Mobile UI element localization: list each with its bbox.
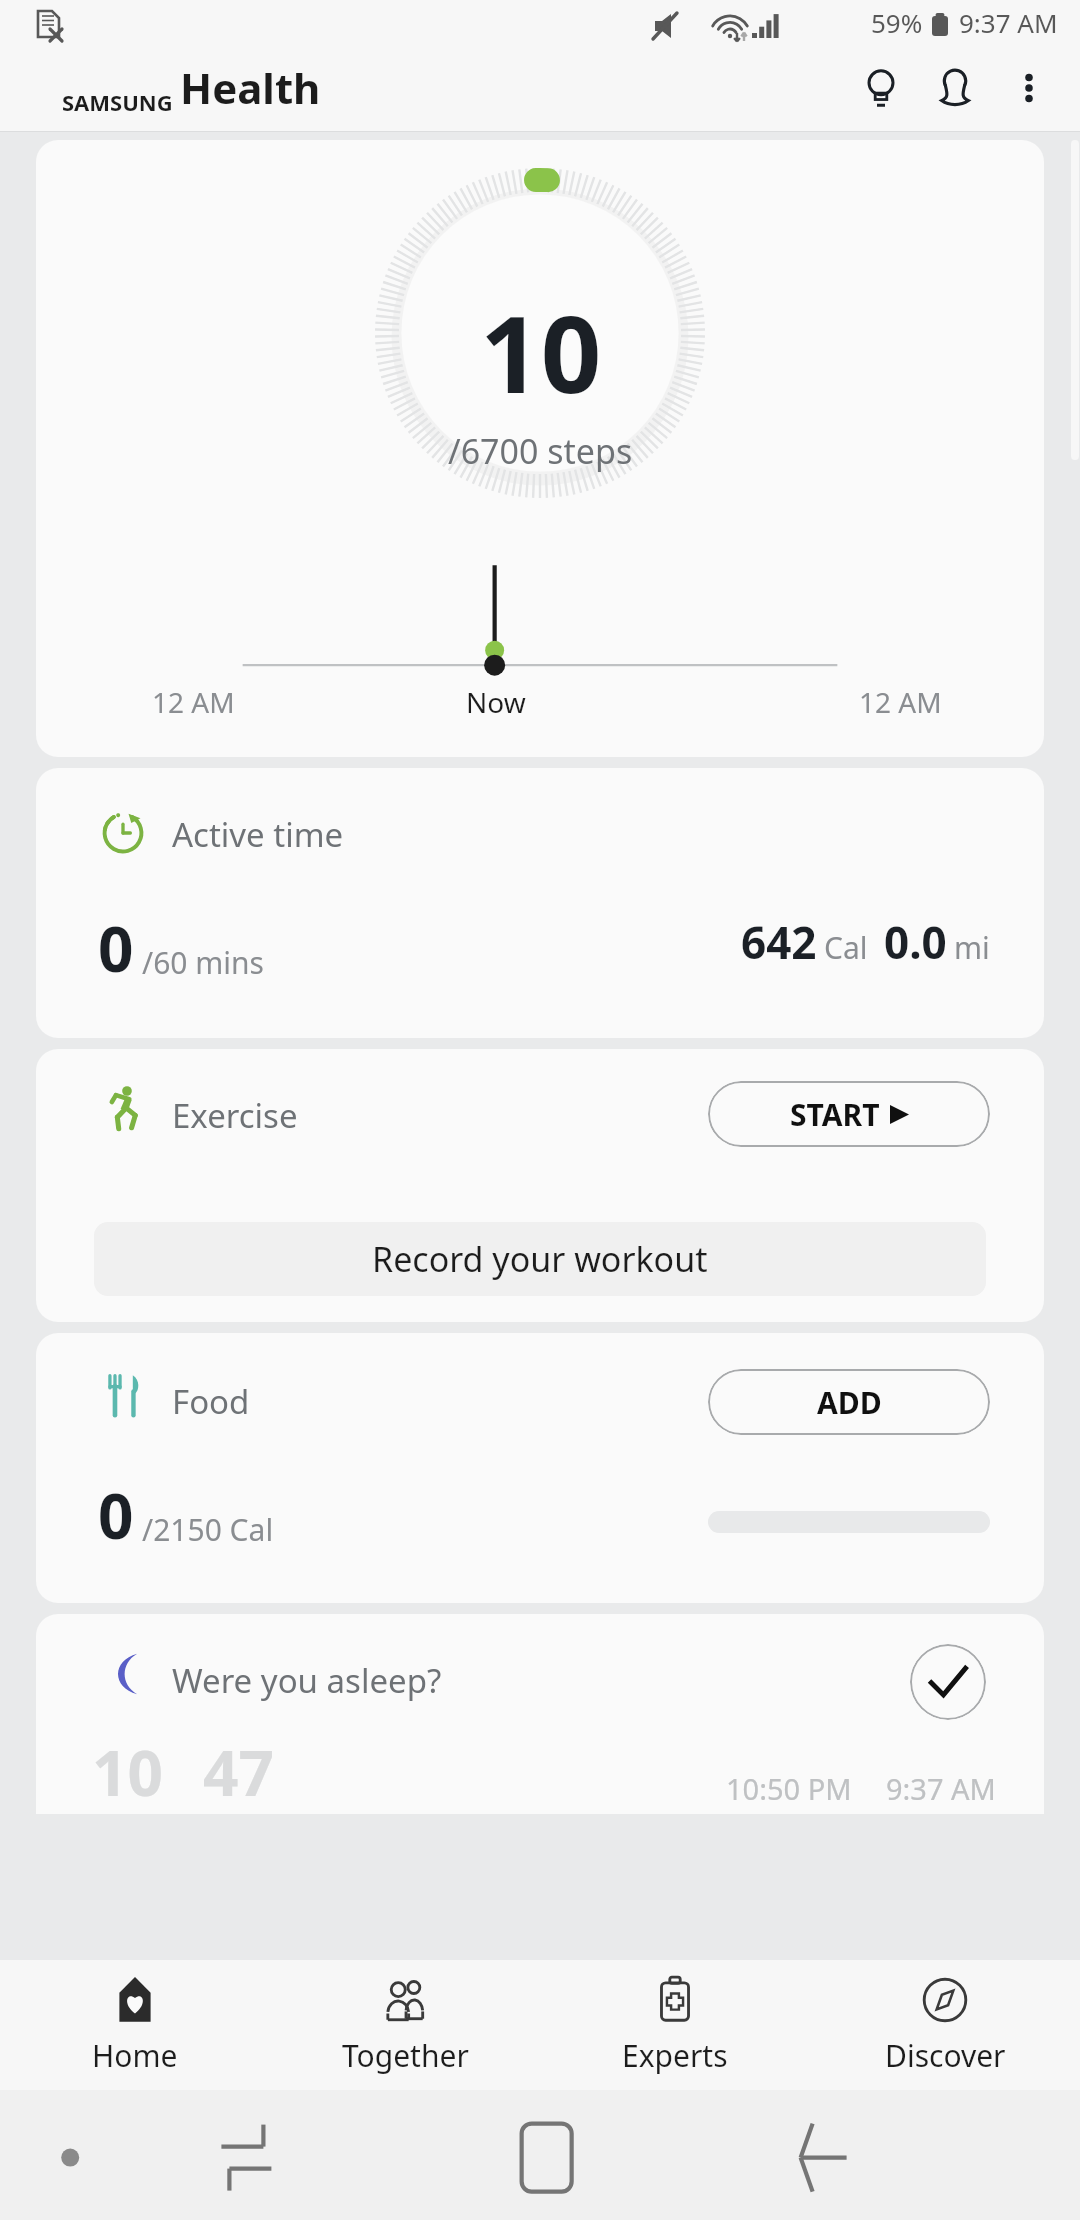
staticText: Now [466, 683, 526, 721]
button[interactable]: START [708, 1081, 990, 1147]
button[interactable]: Discover [810, 1960, 1080, 2090]
staticText: 10:50 PM [726, 1769, 852, 1808]
button[interactable]: Record your workout [94, 1222, 986, 1296]
button[interactable]: Confirm sleep [910, 1644, 986, 1720]
staticText: Home [92, 2035, 178, 2076]
staticText: 0 [98, 906, 134, 990]
staticText: Health [180, 59, 321, 116]
staticText: Cal [824, 927, 868, 968]
staticText: 642 [741, 912, 817, 972]
button[interactable]: Tips [844, 51, 918, 125]
staticText: /6700 steps [448, 428, 633, 474]
staticText: Experts [622, 2035, 728, 2076]
button[interactable]: 10 [36, 140, 1044, 757]
staticText: /60 mins [142, 942, 264, 983]
button[interactable]: Active time [36, 768, 1044, 1038]
staticText: 0.0 [884, 912, 947, 972]
staticText: 10 [480, 280, 602, 424]
staticText: Exercise [172, 1093, 298, 1138]
button[interactable]: Exercise [36, 1049, 1044, 1322]
staticText: 10 [92, 1730, 163, 1814]
staticText: START [790, 1094, 880, 1135]
staticText: 12 AM [152, 683, 235, 721]
staticText: SAMSUNG [62, 87, 173, 117]
button[interactable]: More options [992, 51, 1066, 125]
staticText: Discover [885, 2035, 1006, 2076]
staticText: Food [172, 1379, 250, 1424]
staticText: 9:37 AM [886, 1769, 996, 1808]
staticText: 12 AM [859, 683, 942, 721]
button[interactable]: Were you asleep? [36, 1614, 1044, 1814]
staticText: Active time [172, 812, 344, 857]
staticText: Together [342, 2035, 469, 2076]
button[interactable]: Together [270, 1960, 540, 2090]
button[interactable]: Home [0, 1960, 270, 2090]
staticText: Were you asleep? [172, 1658, 442, 1703]
button[interactable]: ADD [708, 1369, 990, 1435]
staticText: /2150 Cal [142, 1509, 274, 1550]
button[interactable]: Profile [918, 51, 992, 125]
staticText: 9:37 AM [959, 5, 1058, 40]
staticText: mi [954, 927, 990, 968]
staticText: 47 [203, 1730, 274, 1814]
button[interactable]: Food [36, 1333, 1044, 1603]
staticText: Record your workout [372, 1236, 708, 1282]
staticText: ADD [817, 1382, 882, 1423]
button[interactable]: Experts [540, 1960, 810, 2090]
staticText: 59% [871, 5, 923, 40]
staticText: 0 [98, 1473, 134, 1557]
